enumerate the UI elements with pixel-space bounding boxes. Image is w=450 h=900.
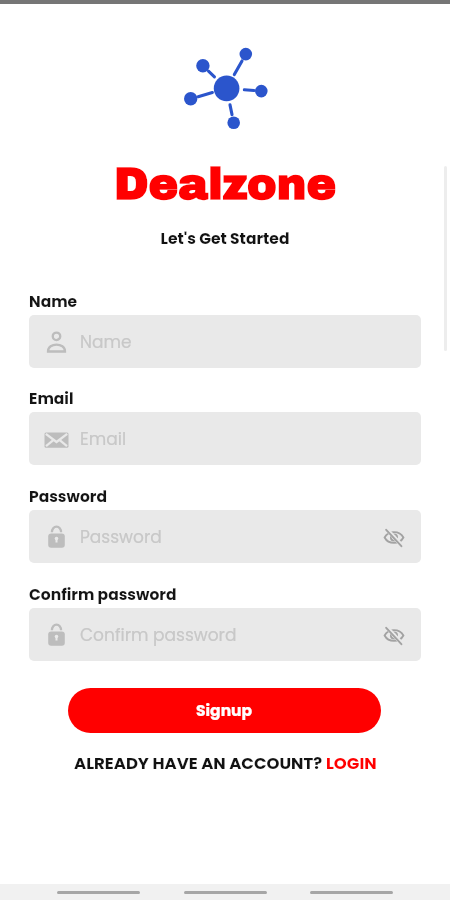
staticText: Signup bbox=[196, 700, 253, 722]
staticText: Name bbox=[29, 291, 78, 313]
staticText: Password bbox=[29, 486, 107, 508]
staticText: Email bbox=[29, 388, 74, 410]
button[interactable]: Password bbox=[29, 510, 421, 563]
staticText: Let's Get Started bbox=[0, 228, 450, 250]
button[interactable]: Email bbox=[29, 412, 421, 465]
staticText: Name bbox=[80, 330, 132, 354]
button[interactable]: Confirm password bbox=[29, 608, 421, 661]
button[interactable]: System navigation bbox=[310, 891, 393, 894]
button[interactable]: LOGIN bbox=[326, 752, 377, 775]
staticText: Dealzone bbox=[0, 160, 450, 208]
other: Dealzone logo bbox=[0, 0, 450, 900]
button[interactable]: System navigation bbox=[184, 891, 267, 894]
button[interactable]: Name bbox=[29, 315, 421, 368]
button[interactable]: System navigation bbox=[57, 891, 140, 894]
button[interactable]: Toggle password visibility bbox=[381, 524, 407, 550]
button[interactable]: Signup bbox=[68, 688, 381, 733]
button[interactable]: Toggle password visibility bbox=[381, 622, 407, 648]
staticText: Password bbox=[80, 525, 162, 549]
staticText: Email bbox=[80, 427, 127, 451]
staticText: LOGIN bbox=[326, 752, 377, 775]
staticText: Confirm password bbox=[29, 584, 177, 606]
staticText: ALREADY HAVE AN ACCOUNT? bbox=[74, 752, 326, 775]
staticText: Confirm password bbox=[80, 623, 237, 647]
